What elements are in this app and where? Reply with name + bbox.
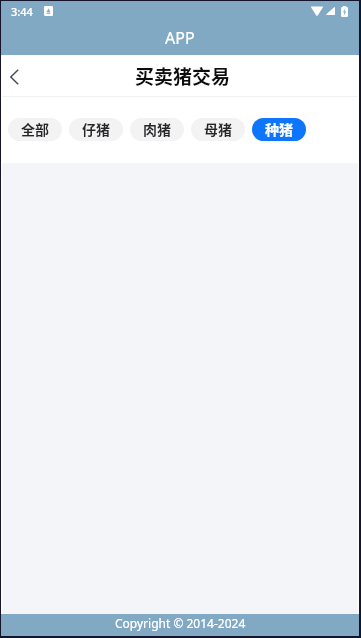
button[interactable]: 全部 [8,118,62,141]
button[interactable]: Copyright © 2014-2024 [1,614,359,636]
staticText: 3:44 [11,4,33,19]
staticText: 买卖猪交易 [135,62,231,90]
staticText: 母猪 [204,119,232,139]
button[interactable]: Back [2,55,26,97]
staticText: 肉猪 [143,119,171,139]
button[interactable]: 母猪 [191,118,245,141]
staticText: 仔猪 [82,119,110,139]
button[interactable]: 种猪 [252,118,306,141]
staticText: Copyright © 2014-2024 [115,615,246,631]
button[interactable]: 肉猪 [130,118,184,141]
button[interactable]: 仔猪 [69,118,123,141]
staticText: APP [165,27,195,49]
staticText: 全部 [21,119,49,139]
staticText: 种猪 [265,119,293,139]
